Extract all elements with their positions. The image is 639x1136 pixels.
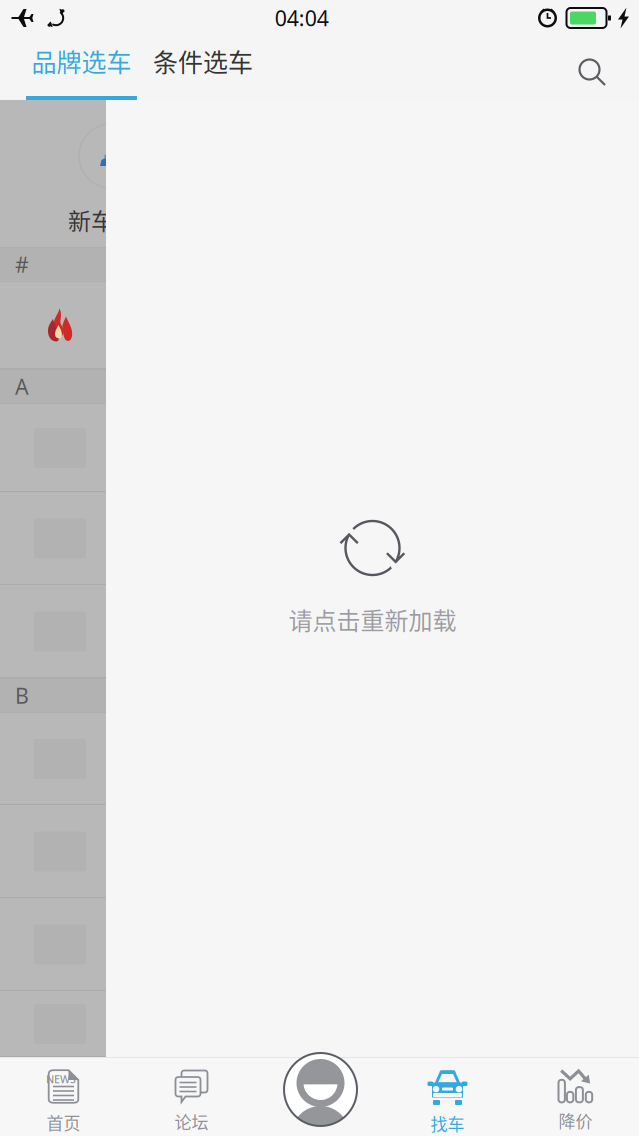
staticText: 首页 bbox=[46, 1110, 80, 1135]
staticText: A bbox=[15, 372, 29, 401]
staticText: 请点击重新加载 bbox=[288, 602, 456, 637]
staticText: 新车 bbox=[68, 203, 114, 236]
staticText: 论坛 bbox=[174, 1109, 208, 1134]
button[interactable]: 条件选车 bbox=[137, 36, 269, 100]
staticText: 降价 bbox=[558, 1108, 592, 1133]
button[interactable]: NEWS bbox=[0, 1057, 127, 1136]
staticText: 条件选车 bbox=[153, 43, 253, 79]
staticText: # bbox=[15, 250, 29, 279]
button[interactable]: 请点击重新加载 bbox=[106, 100, 639, 1057]
button[interactable]: 我的 bbox=[284, 1053, 357, 1126]
button[interactable]: 论坛 bbox=[127, 1057, 255, 1136]
button[interactable]: 降价 bbox=[511, 1057, 639, 1136]
button[interactable]: 搜索 bbox=[557, 36, 629, 100]
button[interactable]: 找车 bbox=[383, 1057, 511, 1136]
staticText: 找车 bbox=[430, 1111, 464, 1136]
staticText: 品牌选车 bbox=[31, 43, 131, 79]
staticText: NEWS bbox=[46, 1072, 76, 1086]
staticText: B bbox=[15, 681, 29, 710]
button[interactable]: 品牌选车 bbox=[26, 36, 137, 100]
staticText: 04:04 bbox=[275, 4, 329, 32]
